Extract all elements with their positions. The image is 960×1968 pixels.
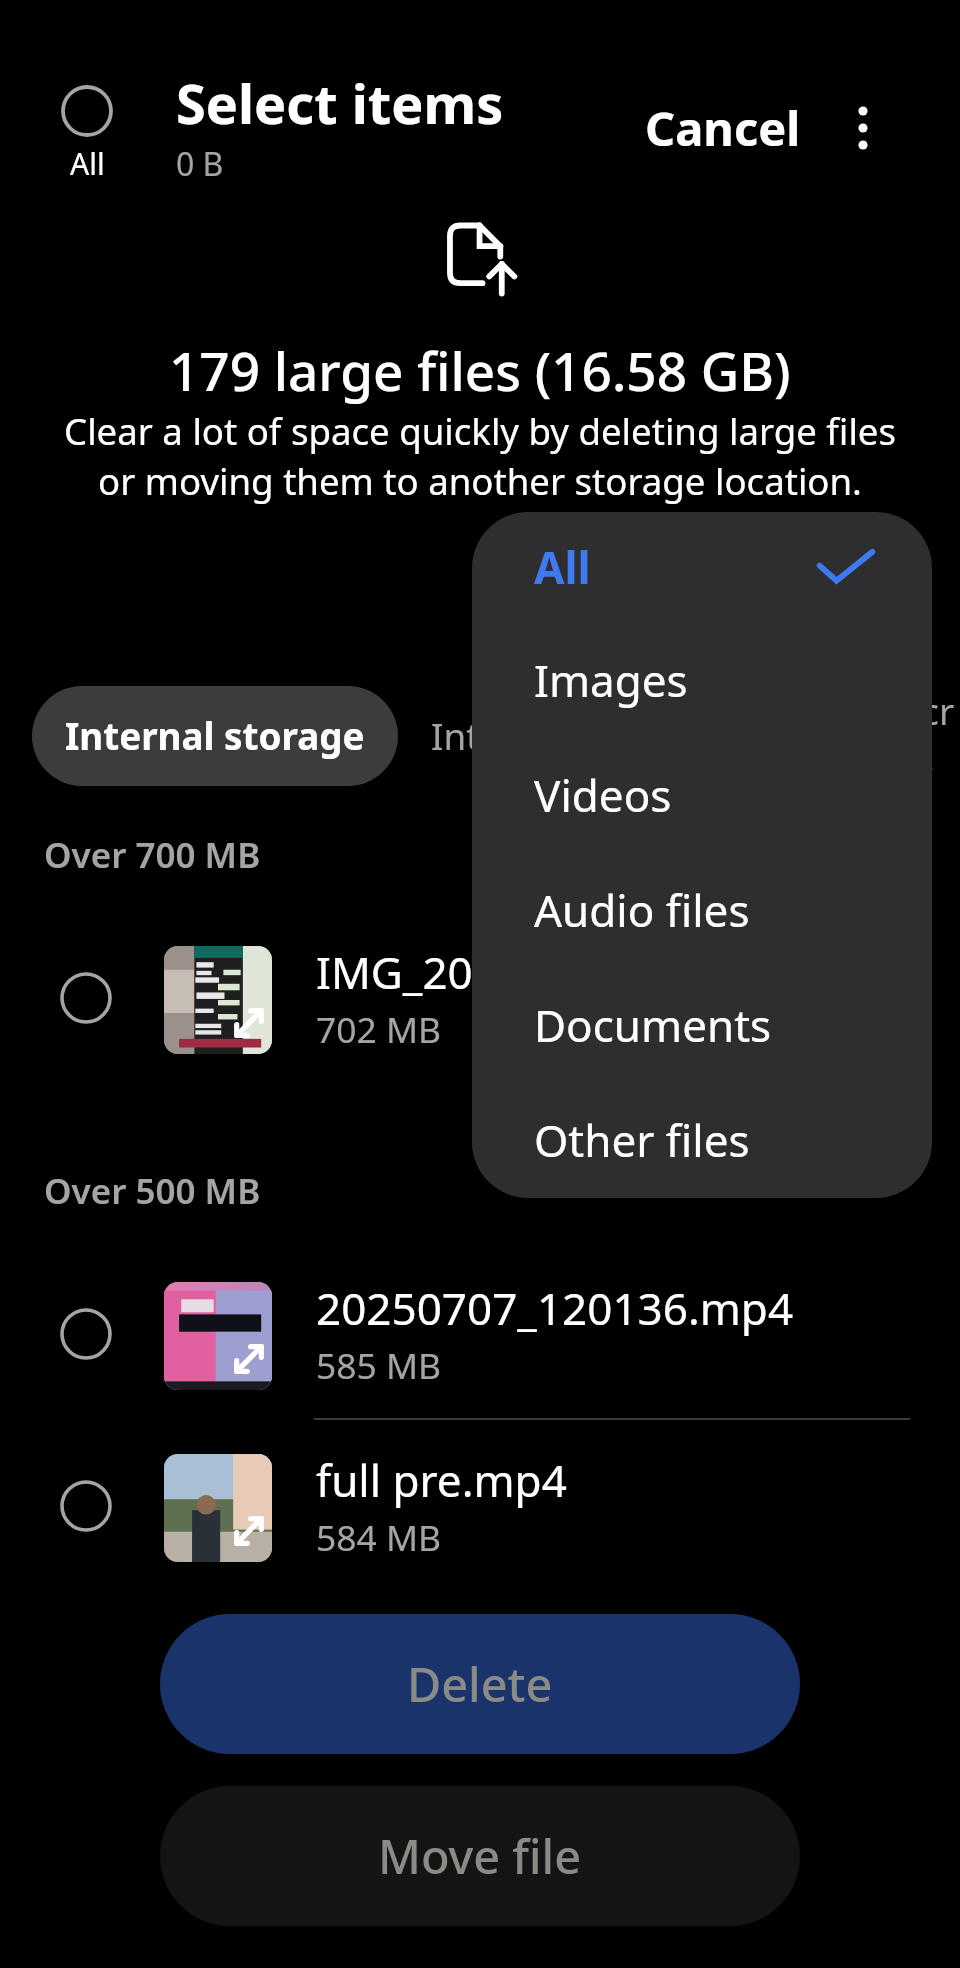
button[interactable]: IMG_20 xyxy=(0,912,960,1080)
button[interactable]: Other files xyxy=(472,1082,932,1197)
staticText: Cancel xyxy=(645,96,801,160)
button[interactable]: More options xyxy=(831,96,895,160)
staticText: Other files xyxy=(534,1110,750,1170)
button[interactable]: Recent screenshots xyxy=(743,686,960,786)
staticText: 584 MB xyxy=(316,1513,442,1561)
staticText: All xyxy=(70,143,105,184)
staticText: Clear a lot of space quickly by deleting… xyxy=(64,406,896,506)
staticText: 702 MB xyxy=(316,1005,442,1053)
button[interactable]: full pre.mp4 xyxy=(0,1420,960,1588)
button[interactable]: Documents xyxy=(472,967,932,1082)
staticText: Internal storage xyxy=(65,711,365,761)
staticText: All xyxy=(534,537,591,597)
button[interactable]: Audio files xyxy=(472,852,932,967)
button[interactable]: Over 700 MB xyxy=(44,831,261,879)
button[interactable]: All xyxy=(472,512,932,622)
button[interactable]: Internal storage xyxy=(32,686,398,786)
staticText: Move file xyxy=(378,1824,582,1888)
button[interactable]: Images xyxy=(472,622,932,737)
staticText: 20250707_120136.mp4 xyxy=(316,1278,794,1338)
staticText: Recent screenshots xyxy=(776,686,959,786)
staticText: full pre.mp4 xyxy=(316,1450,567,1510)
button[interactable]: Cancel xyxy=(645,96,801,160)
staticText: Images xyxy=(534,650,688,710)
staticText: 585 MB xyxy=(316,1341,442,1389)
button[interactable]: Select all xyxy=(50,85,124,184)
button[interactable]: Move file xyxy=(160,1786,800,1926)
staticText: Documents xyxy=(534,995,772,1055)
staticText: 0 B xyxy=(176,142,224,186)
staticText: Select items xyxy=(176,66,504,140)
button[interactable]: Videos xyxy=(472,737,932,852)
staticText: Videos xyxy=(534,765,672,825)
staticText: Internal storage xyxy=(431,711,710,761)
button[interactable]: 20250707_120136.mp4 xyxy=(0,1248,960,1416)
staticText: IMG_20 xyxy=(316,942,473,1002)
staticText: Audio files xyxy=(534,880,750,940)
button[interactable]: Internal storage xyxy=(398,686,743,786)
staticText: Over 500 MB xyxy=(44,1167,261,1215)
button[interactable]: Over 500 MB xyxy=(44,1167,261,1215)
staticText: Over 700 MB xyxy=(44,831,261,879)
button[interactable]: Delete xyxy=(160,1614,800,1754)
staticText: Delete xyxy=(407,1652,553,1716)
staticText: 179 large files (16.58 GB) xyxy=(169,334,791,406)
